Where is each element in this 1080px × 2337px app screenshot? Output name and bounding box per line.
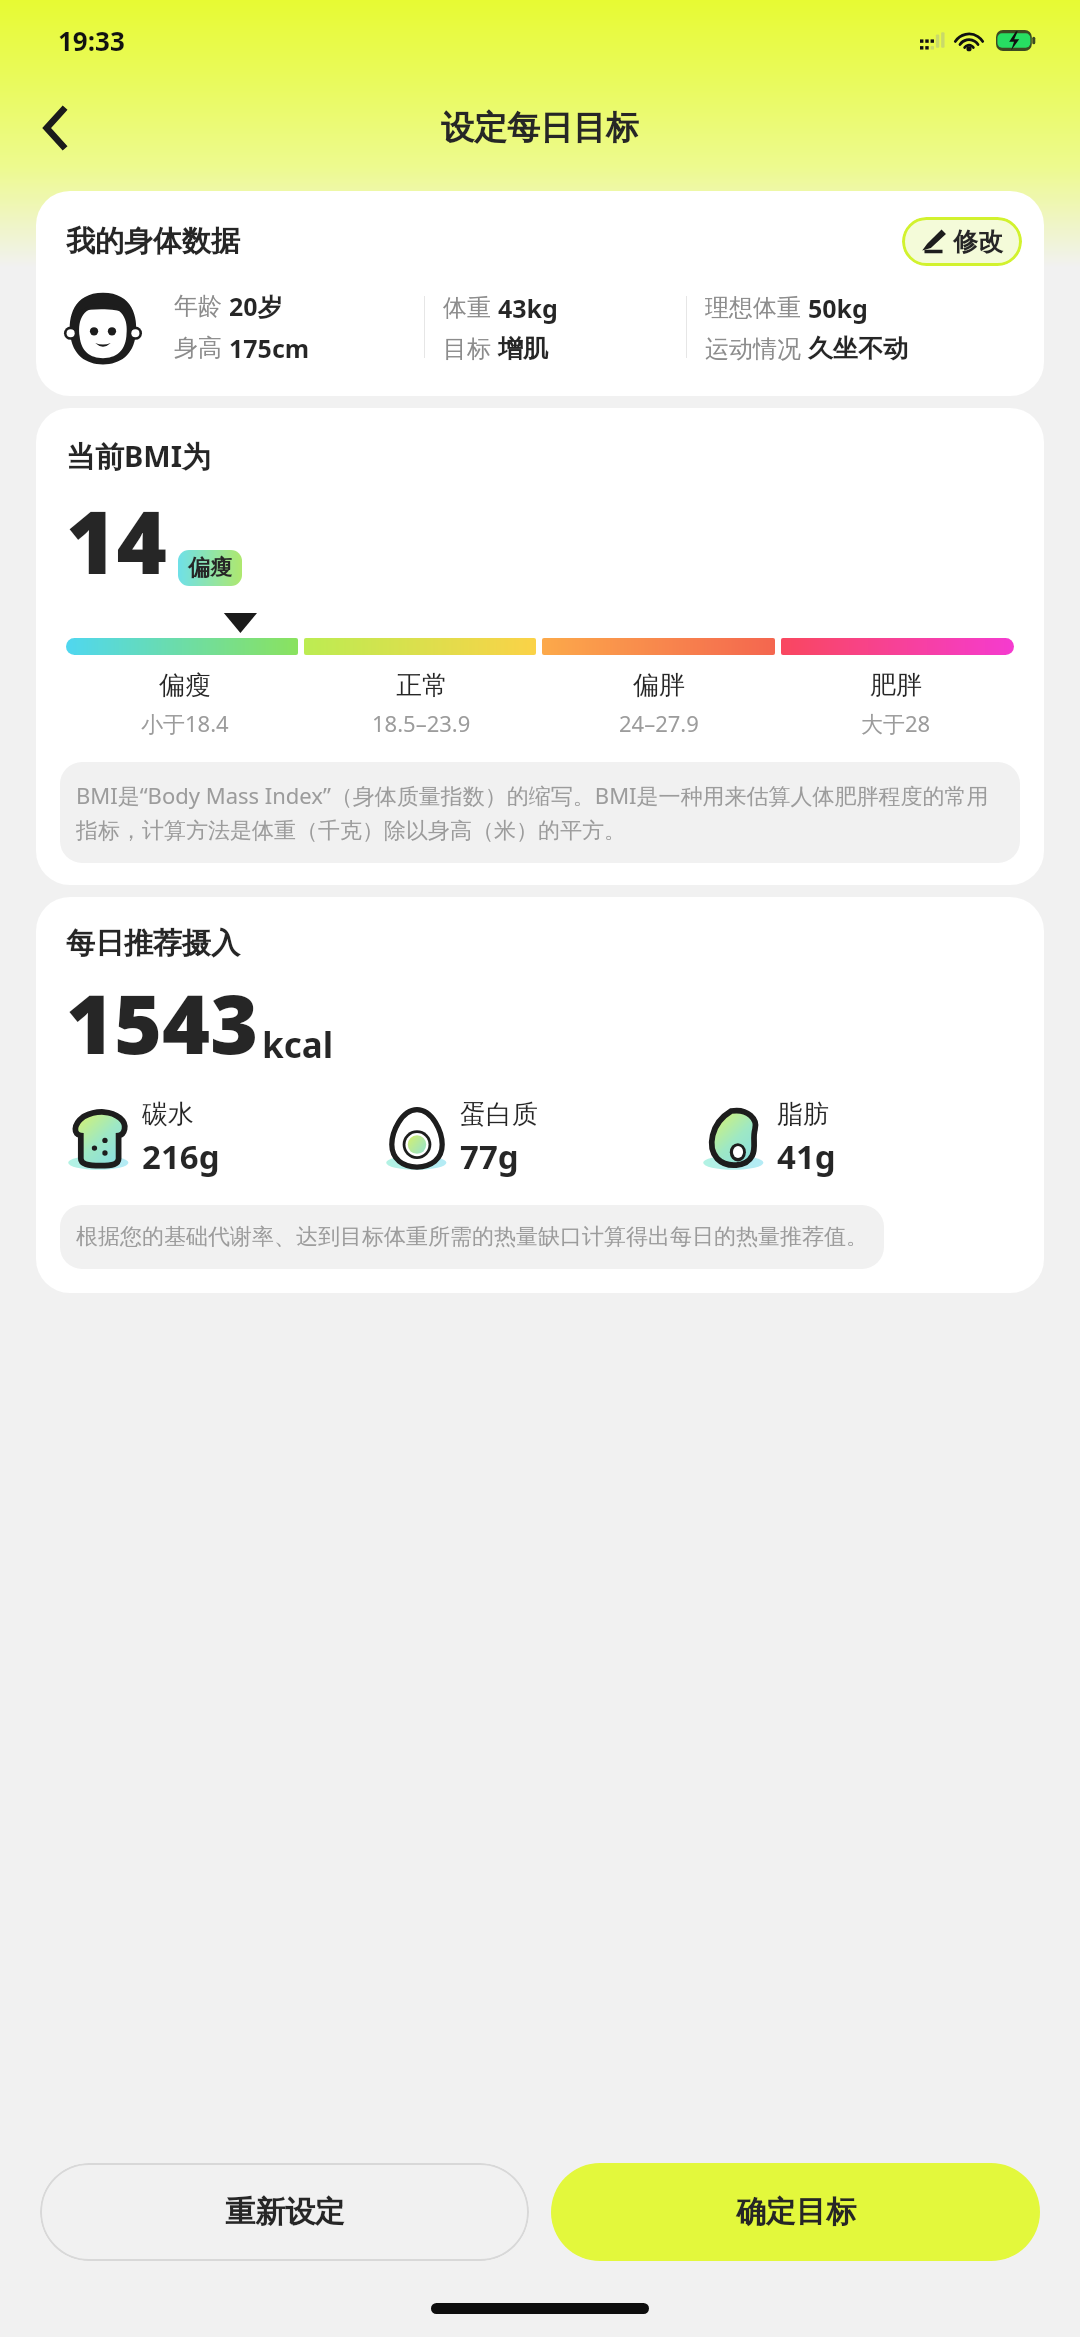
staticText: 根据您的基础代谢率、达到目标体重所需的热量缺口计算得出每日的热量推荐值。 <box>76 1223 868 1251</box>
staticText: 蛋白质 <box>460 1098 538 1131</box>
staticText: 大于28 <box>861 708 931 738</box>
staticText: 重新设定 <box>225 2193 345 2231</box>
staticText: 19:33 <box>58 23 125 58</box>
staticText: 目标 <box>443 334 491 364</box>
staticText: 20岁 <box>229 289 283 323</box>
staticText: 修改 <box>953 226 1003 257</box>
staticText: 当前BMI为 <box>66 436 211 476</box>
staticText: 偏胖 <box>633 669 685 702</box>
staticText: kcal <box>262 1021 334 1069</box>
button[interactable]: 修改 <box>902 217 1022 266</box>
staticText: 偏瘦 <box>159 669 211 702</box>
staticText: 每日推荐摄入 <box>66 925 240 962</box>
staticText: 肥胖 <box>870 669 922 702</box>
staticText: 增肌 <box>498 333 548 364</box>
staticText: 年龄 <box>174 291 222 321</box>
staticText: 18.5–23.9 <box>372 708 471 738</box>
staticText: BMI是“Body Mass Index”（身体质量指数）的缩写。BMI是一种用… <box>76 780 1004 845</box>
staticText: 24–27.9 <box>619 708 699 738</box>
button[interactable]: Back <box>22 95 88 161</box>
staticText: 77g <box>460 1134 519 1179</box>
staticText: 41g <box>777 1134 836 1179</box>
staticText: 运动情况 <box>705 334 801 364</box>
staticText: 久坐不动 <box>808 333 908 364</box>
staticText: 确定目标 <box>736 2193 856 2231</box>
staticText: 身高 <box>174 333 222 363</box>
staticText: 设定每日目标 <box>441 107 639 149</box>
staticText: 50kg <box>808 291 868 325</box>
staticText: 脂肪 <box>777 1098 829 1131</box>
staticText: 我的身体数据 <box>66 223 240 260</box>
staticText: 正常 <box>396 669 448 702</box>
staticText: 小于18.4 <box>141 708 229 738</box>
staticText: 14 <box>66 482 167 599</box>
staticText: 偏瘦 <box>188 554 232 582</box>
button[interactable]: 重新设定 <box>40 2163 529 2261</box>
staticText: 碳水 <box>142 1098 194 1131</box>
staticText: 理想体重 <box>705 293 801 323</box>
staticText: 175cm <box>229 331 310 365</box>
staticText: 体重 <box>443 293 491 323</box>
staticText: 216g <box>142 1134 220 1179</box>
button[interactable]: 确定目标 <box>551 2163 1040 2261</box>
staticText: 1543 <box>66 966 259 1078</box>
staticText: 43kg <box>498 291 558 325</box>
